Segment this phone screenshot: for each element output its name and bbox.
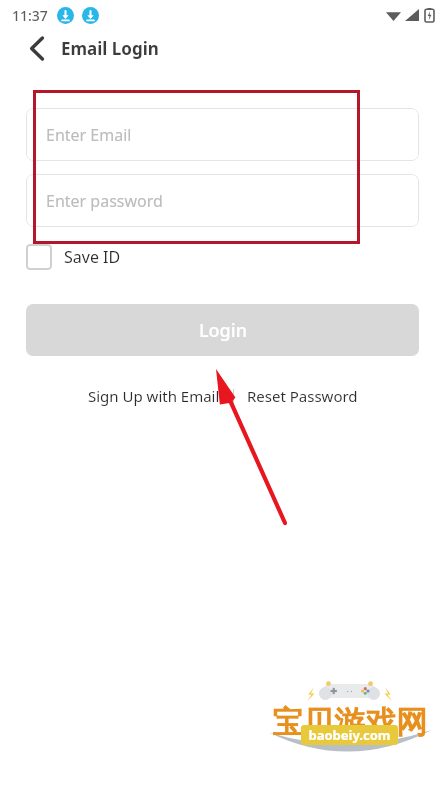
button[interactable]: Enter password [26,174,419,227]
staticText: Email Login [61,37,159,60]
staticText: 宝贝游戏网 [272,703,427,742]
button[interactable]: Login [26,304,419,356]
staticText: Save ID [64,246,121,268]
button[interactable]: Sign Up with Email [84,382,224,410]
staticText: Enter Email [46,124,132,146]
staticText: 11:37 [12,6,48,25]
button[interactable]: Save ID [26,238,121,276]
staticText: Enter password [46,190,163,212]
button[interactable]: Enter Email [26,108,419,161]
staticText: Login [199,318,247,343]
staticText: Sign Up with Email [88,386,220,406]
staticText: baobeiy.com [308,726,391,744]
button[interactable]: Reset Password [243,382,362,410]
button[interactable]: Back [22,33,52,63]
staticText: Reset Password [247,386,358,406]
